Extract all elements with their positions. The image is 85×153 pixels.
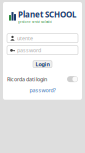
button[interactable]: Login	[33, 61, 52, 68]
staticText: Login	[35, 61, 49, 68]
staticText: Ricorda dati login	[7, 76, 47, 83]
button[interactable]: Ricorda dati login	[7, 76, 78, 83]
staticText: Planet SCHOOL	[18, 9, 76, 20]
button[interactable]: password?	[29, 87, 55, 94]
staticText: password?	[29, 87, 55, 94]
staticText: utente	[17, 35, 33, 42]
staticText: gestione servizi scolastici	[18, 20, 52, 24]
staticText: password	[17, 47, 41, 54]
